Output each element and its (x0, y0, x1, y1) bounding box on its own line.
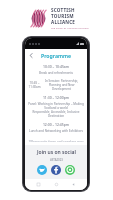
staticText: #STA2023 (50, 158, 63, 162)
staticText: *Please note times and speakers may be s… (28, 140, 84, 142)
button[interactable]: Recents (34, 180, 43, 189)
button[interactable]: Home (52, 180, 61, 189)
button[interactable]: Twitter (37, 165, 47, 175)
staticText: Lunch and Networking with Exhibitors (28, 129, 84, 133)
staticText: the voice of Scottish tourism (51, 26, 89, 29)
staticText: SCOTTISH (51, 7, 75, 13)
staticText: Panel: Working in Partnership – Making S… (28, 102, 84, 110)
staticText: Programme (41, 52, 71, 59)
staticText: 10:45 – 11:30am (28, 81, 41, 89)
staticText: TOURISM (51, 13, 74, 19)
button[interactable]: WhatsApp (65, 165, 75, 175)
button[interactable]: Back (69, 180, 78, 189)
button[interactable]: Back (27, 51, 36, 60)
staticText: 12:00 – 12:45pm (28, 122, 84, 127)
staticText: 10:30 – 10:45am (28, 64, 84, 69)
staticText: Break and refreshments (28, 71, 84, 75)
staticText: 11:30 – 12:00pm (28, 95, 84, 100)
staticText: Join us on social (37, 149, 76, 156)
staticText: ALLIANCE (51, 19, 76, 25)
staticText: Responsible, Accessible, Inclusive Desti… (28, 110, 84, 118)
staticText: In Session: Partnership, Planning and Ne… (41, 79, 82, 91)
button[interactable]: Facebook (51, 165, 61, 175)
